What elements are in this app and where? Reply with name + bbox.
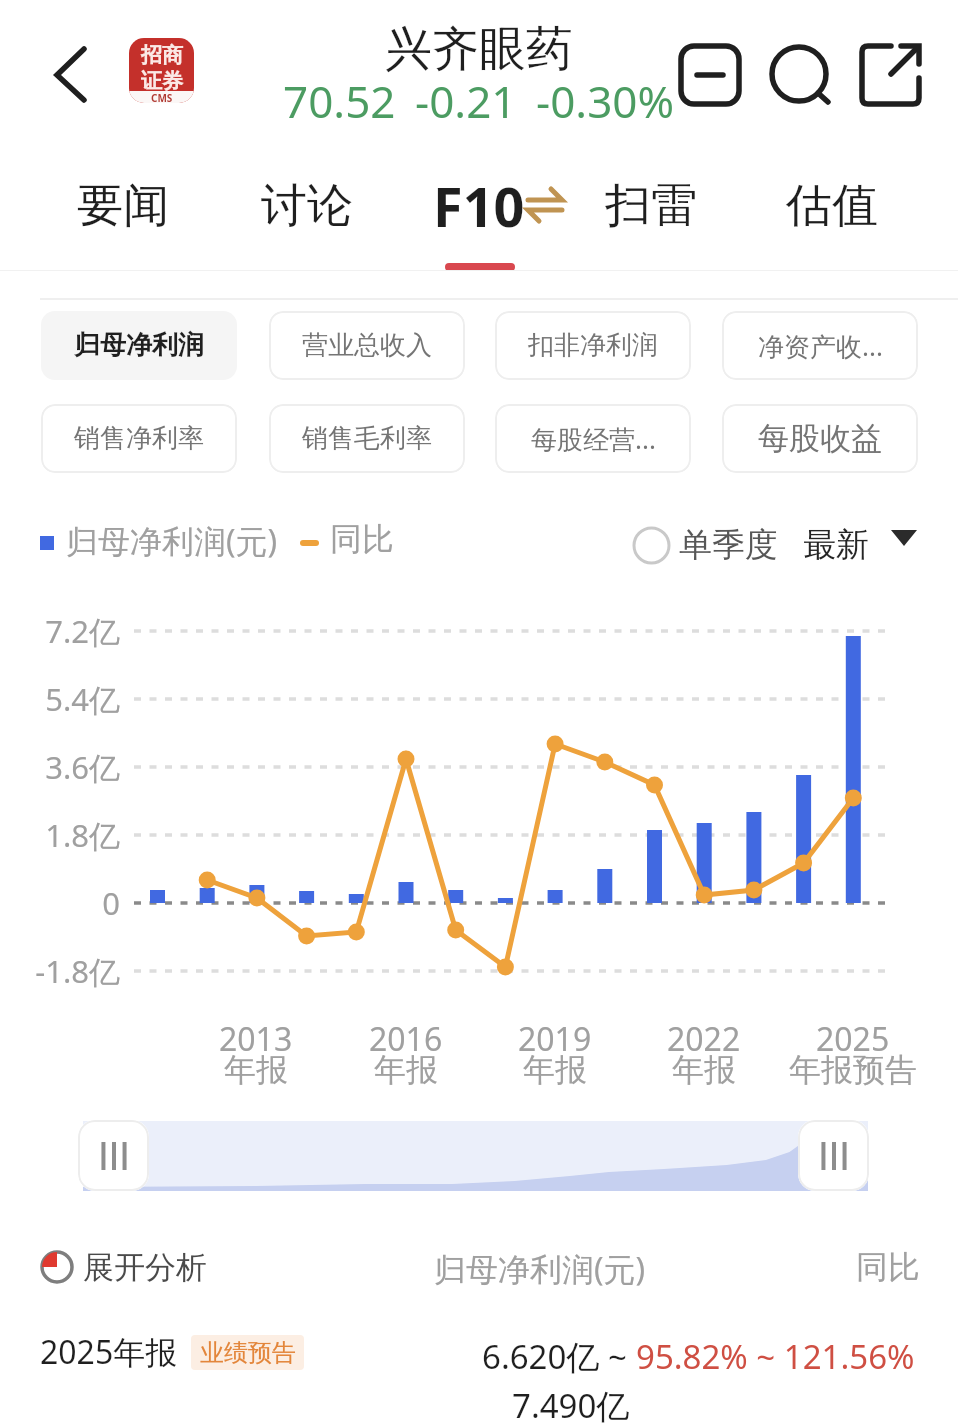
staticText: 证券 (141, 68, 183, 94)
button[interactable]: Remove from watchlist (666, 30, 756, 120)
staticText: 每股收益 (758, 419, 882, 458)
staticText: 6.620亿 ~ (482, 1334, 636, 1379)
staticText: 2019 (518, 1017, 592, 1061)
staticText: 年报 (374, 1050, 438, 1090)
staticText: -0.30% (536, 71, 675, 131)
staticText: 0 (0, 882, 120, 924)
staticText: 2013 (219, 1017, 293, 1061)
staticText: 每股经营... (531, 421, 656, 457)
staticText: 销售净利率 (74, 422, 204, 455)
button[interactable]: Adjust range (798, 1120, 869, 1191)
button[interactable]: 最新 (803, 515, 917, 575)
button[interactable]: 营业总收入 (269, 311, 465, 380)
staticText: 展开分析 (83, 1248, 207, 1287)
button[interactable]: F10 (389, 163, 569, 249)
staticText: 单季度 (679, 524, 778, 566)
staticText: 7.490亿 (512, 1383, 630, 1426)
staticText: 归母净利润(元) (66, 519, 278, 563)
button[interactable]: 每股收益 (722, 404, 918, 473)
button[interactable]: Back (30, 32, 116, 118)
staticText: 扣非净利润 (528, 329, 658, 362)
button[interactable]: 讨论 (217, 163, 397, 249)
staticText: 销售毛利率 (302, 422, 432, 455)
staticText: 营业总收入 (302, 329, 432, 362)
button[interactable]: 估值 (742, 163, 922, 249)
staticText: 讨论 (261, 177, 353, 235)
staticText: 年报 (224, 1050, 288, 1090)
staticText: 业绩预告 (200, 1338, 296, 1368)
staticText: 最新 (803, 524, 869, 566)
staticText: -1.8亿 (0, 950, 120, 992)
staticText: F10 (433, 169, 525, 243)
staticText: 年报 (523, 1050, 587, 1090)
staticText: -0.21 (415, 71, 517, 131)
button[interactable]: 净资产收... (722, 311, 918, 380)
staticText: 年报 (672, 1050, 736, 1090)
button[interactable]: 扣非净利润 (495, 311, 691, 380)
button[interactable]: 展开分析 (40, 1243, 207, 1291)
staticText: 扫雷 (605, 177, 697, 235)
staticText: 兴齐眼药 (385, 20, 573, 79)
staticText: 净资产收... (758, 328, 883, 364)
staticText: 3.6亿 (0, 746, 120, 788)
button[interactable]: 每股经营... (495, 404, 691, 473)
staticText: 5.4亿 (0, 678, 120, 720)
staticText: 2025 (816, 1017, 890, 1061)
staticText: 归母净利润(元) (434, 1247, 646, 1291)
button[interactable]: Adjust range (78, 1120, 149, 1191)
staticText: 同比 (856, 1247, 920, 1287)
staticText: 70.52 (283, 71, 396, 131)
button[interactable]: 销售净利率 (41, 404, 237, 473)
staticText: CMS (151, 91, 173, 103)
button[interactable]: CMS logo (129, 38, 194, 103)
staticText: 2022 (667, 1017, 741, 1061)
staticText: 2016 (369, 1017, 443, 1061)
button[interactable]: 单季度 (633, 515, 778, 575)
staticText: 年报预告 (789, 1050, 917, 1090)
button[interactable]: 销售毛利率 (269, 404, 465, 473)
button[interactable]: 要闻 (33, 163, 213, 249)
button[interactable]: 扫雷 (561, 163, 741, 249)
staticText: 95.82% ~ 121.56% (636, 1334, 915, 1379)
staticText: 2025年报 (40, 1330, 178, 1374)
button[interactable]: Search (755, 30, 845, 120)
button[interactable]: Share (846, 30, 936, 120)
staticText: 7.2亿 (0, 610, 120, 652)
staticText: 估值 (786, 177, 878, 235)
staticText: 同比 (330, 519, 394, 559)
button[interactable]: 归母净利润 (41, 311, 237, 380)
staticText: 1.8亿 (0, 814, 120, 856)
staticText: 要闻 (77, 177, 169, 235)
staticText: 归母净利润 (74, 329, 204, 362)
staticText: 招商 (141, 42, 183, 68)
